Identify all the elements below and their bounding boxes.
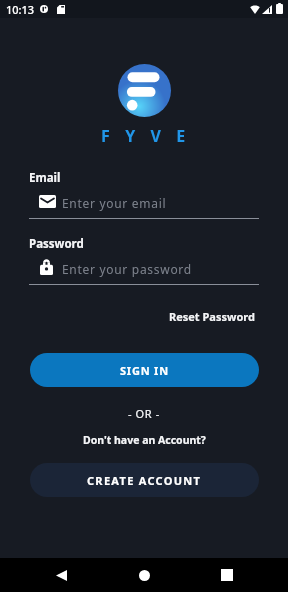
button[interactable]: Reset Password xyxy=(163,303,261,330)
button[interactable]: Home xyxy=(119,558,169,592)
staticText: Reset Password xyxy=(169,309,255,324)
staticText: Password xyxy=(29,236,84,252)
staticText: SIGN IN xyxy=(120,363,169,378)
button[interactable]: Enter your email xyxy=(29,188,259,218)
staticText: F Y V E xyxy=(101,125,191,147)
button[interactable]: Enter your password xyxy=(29,254,259,284)
staticText: Email xyxy=(29,170,61,186)
staticText: - OR - xyxy=(128,406,160,421)
staticText: 10:13 xyxy=(6,2,35,17)
staticText: Enter your password xyxy=(62,261,192,277)
button[interactable]: Recents xyxy=(202,558,252,592)
button[interactable]: SIGN IN xyxy=(30,353,259,387)
staticText: CREATE ACCOUNT xyxy=(87,473,202,488)
staticText: Enter your email xyxy=(62,195,167,211)
staticText: Don't have an Account? xyxy=(83,433,206,447)
button[interactable]: Back xyxy=(36,558,86,592)
button[interactable]: CREATE ACCOUNT xyxy=(30,463,259,497)
